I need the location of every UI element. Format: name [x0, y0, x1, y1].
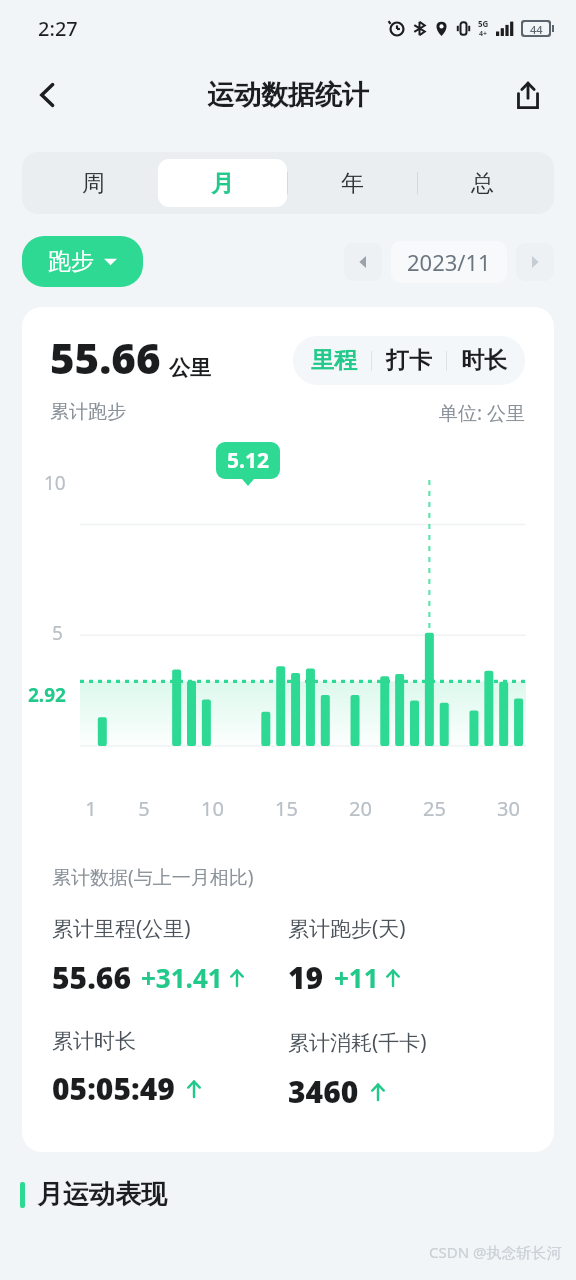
button[interactable]: 跑步 — [22, 236, 143, 287]
staticText: 1 — [85, 795, 97, 822]
staticText: 月运动表现 — [37, 1178, 167, 1211]
staticText: 累计时长 — [52, 1028, 136, 1054]
button[interactable]: 2023/11 — [391, 241, 507, 283]
staticText: 4+ — [479, 29, 488, 39]
staticText: 44 — [530, 22, 543, 35]
button[interactable]: 打卡 — [372, 338, 446, 383]
staticText: 累计跑步 — [50, 400, 126, 424]
staticText: 55.66 — [52, 957, 131, 998]
staticText: 2023/11 — [407, 247, 491, 277]
staticText: 3460 — [288, 1071, 359, 1112]
staticText: 跑步 — [48, 247, 94, 276]
button[interactable]: 里程 — [297, 338, 371, 383]
staticText: 年 — [341, 169, 364, 198]
staticText: 15 — [275, 795, 298, 822]
staticText: 运动数据统计 — [207, 78, 369, 112]
staticText: 2.92 — [28, 682, 66, 708]
staticText: 公里 — [169, 355, 211, 381]
staticText: 5 — [52, 620, 63, 646]
button[interactable]: Previous month — [344, 243, 382, 281]
staticText: 5G — [478, 18, 489, 29]
staticText: 5.12 — [227, 446, 269, 475]
staticText: 5 — [138, 795, 150, 822]
button[interactable]: 时长 — [447, 338, 521, 383]
staticText: 累计消耗(千卡) — [288, 1028, 427, 1057]
staticText: 时长 — [461, 346, 507, 375]
staticText: 总 — [471, 169, 494, 198]
button[interactable]: 总 — [417, 159, 547, 207]
button[interactable]: Share — [502, 69, 554, 121]
staticText: 55.66 — [50, 329, 161, 386]
staticText: 单位: 公里 — [439, 400, 526, 426]
button[interactable]: 年 — [287, 159, 417, 207]
staticText: CSDN @执念斩长河 — [429, 1242, 562, 1262]
staticText: 30 — [497, 795, 520, 822]
staticText: 累计里程(公里) — [52, 914, 191, 943]
staticText: 周 — [82, 169, 105, 198]
staticText: 累计跑步(天) — [288, 914, 406, 943]
staticText: 10 — [201, 795, 224, 822]
button[interactable]: 月 — [158, 159, 287, 207]
staticText: 月 — [211, 169, 234, 198]
staticText: 里程 — [311, 346, 357, 375]
staticText: 打卡 — [386, 346, 432, 375]
staticText: 25 — [423, 795, 446, 822]
button[interactable]: Back — [22, 69, 74, 121]
button[interactable]: Next month — [516, 243, 554, 281]
button[interactable]: 周 — [29, 159, 158, 207]
staticText: 2:27 — [38, 15, 78, 42]
staticText: 19 — [288, 957, 324, 998]
staticText: 10 — [44, 470, 66, 496]
staticText: 累计数据(与上一月相比) — [52, 864, 254, 890]
staticText: 05:05:49 — [52, 1068, 175, 1109]
staticText: 20 — [349, 795, 372, 822]
staticText: +31.41 — [141, 960, 223, 995]
staticText: +11 — [334, 960, 379, 995]
